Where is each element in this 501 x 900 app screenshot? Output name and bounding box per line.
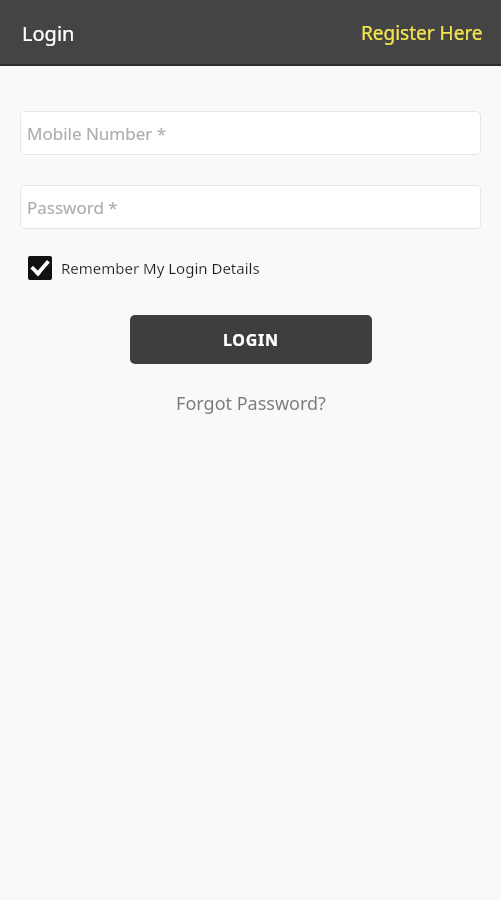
button[interactable]: Register Here xyxy=(353,14,491,52)
staticText: Forgot Password? xyxy=(176,391,326,416)
staticText: Remember My Login Details xyxy=(61,258,260,278)
button[interactable]: Forgot Password? xyxy=(166,387,336,420)
staticText: Mobile Number * xyxy=(27,122,167,145)
button[interactable]: Login xyxy=(14,14,83,53)
staticText: Register Here xyxy=(361,20,483,46)
button[interactable]: Password * xyxy=(20,185,481,229)
button[interactable]: Remember My Login Details xyxy=(24,253,268,283)
staticText: Login xyxy=(22,20,75,47)
button[interactable]: LOGIN xyxy=(130,315,372,364)
staticText: Password * xyxy=(27,196,118,219)
button[interactable]: Mobile Number * xyxy=(20,111,481,155)
staticText: LOGIN xyxy=(223,329,279,351)
